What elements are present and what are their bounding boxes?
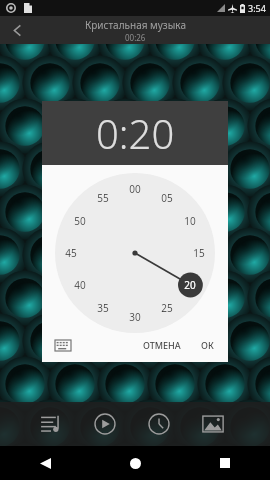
button[interactable]: 0:20	[42, 101, 228, 165]
button[interactable]: Image	[196, 407, 230, 441]
staticText: 00:26	[125, 32, 146, 43]
staticText: 3:54	[248, 2, 266, 14]
button[interactable]: Play	[88, 407, 122, 441]
button[interactable]: Timer	[142, 407, 176, 441]
staticText: 05	[161, 191, 173, 205]
staticText: 10	[184, 214, 196, 228]
staticText: 20	[184, 278, 196, 292]
button[interactable]: ОТМЕНА	[137, 335, 187, 355]
staticText: 30	[129, 310, 141, 324]
staticText: 0:20	[96, 106, 175, 160]
staticText: Кристальная музыка	[85, 18, 186, 32]
staticText: 45	[65, 246, 77, 260]
button[interactable]: ОК	[195, 335, 220, 355]
button[interactable]: Recents	[180, 446, 270, 480]
button[interactable]: Back	[0, 16, 34, 44]
staticText: 00	[129, 182, 141, 196]
staticText: 50	[74, 214, 86, 228]
button[interactable]: 00	[55, 173, 215, 333]
button[interactable]: Back	[0, 446, 90, 480]
button[interactable]: Playlist	[34, 407, 68, 441]
staticText: 40	[74, 278, 86, 292]
staticText: 15	[193, 246, 205, 260]
staticText: ОТМЕНА	[143, 339, 181, 351]
staticText: 35	[97, 301, 109, 315]
staticText: 55	[97, 191, 109, 205]
button[interactable]: Home	[90, 446, 180, 480]
button[interactable]: Keyboard input	[50, 332, 76, 358]
staticText: 25	[161, 301, 173, 315]
staticText: ОК	[201, 339, 214, 351]
